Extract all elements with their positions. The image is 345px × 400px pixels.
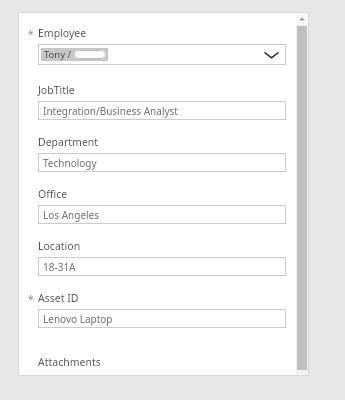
staticText: Asset ID bbox=[38, 291, 79, 305]
button[interactable]: 18-31A bbox=[38, 257, 286, 276]
staticText: Lenovo Laptop bbox=[43, 312, 113, 326]
button[interactable]: Scroll up bbox=[296, 13, 308, 25]
button[interactable]: Tony / bbox=[38, 44, 286, 65]
staticText: Tony / bbox=[44, 48, 72, 61]
button[interactable]: Lenovo Laptop bbox=[38, 309, 286, 328]
button[interactable]: Open employee list bbox=[262, 46, 280, 64]
staticText: Employee bbox=[38, 26, 87, 40]
staticText: Integration/Business Analyst bbox=[43, 104, 178, 118]
staticText: Department bbox=[38, 135, 99, 149]
button[interactable]: Technology bbox=[38, 153, 286, 172]
staticText: Technology bbox=[43, 156, 97, 170]
button[interactable]: Integration/Business Analyst bbox=[38, 101, 286, 120]
staticText: Office bbox=[38, 187, 68, 201]
button[interactable]: Los Angeles bbox=[38, 205, 286, 224]
staticText: 18-31A bbox=[43, 260, 76, 274]
staticText: Los Angeles bbox=[43, 208, 100, 222]
staticText: * bbox=[28, 27, 34, 41]
staticText: JobTitle bbox=[38, 83, 75, 97]
staticText: Location bbox=[38, 239, 81, 253]
staticText: * bbox=[28, 292, 34, 306]
staticText: Attachments bbox=[38, 355, 101, 369]
